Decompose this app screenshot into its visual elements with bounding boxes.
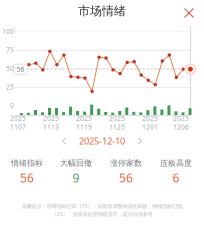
staticText: 大幅回撤 xyxy=(60,158,92,168)
staticText: 56 xyxy=(20,170,34,186)
staticText: （25），短线有反弹回暖需求；提示仅供参考 xyxy=(51,210,152,218)
staticText: 1113 xyxy=(43,122,59,131)
staticText: 2025 xyxy=(43,114,59,122)
staticText: 2025 xyxy=(173,114,189,122)
staticText: 2025 xyxy=(142,114,158,122)
staticText: 56 xyxy=(16,65,24,74)
staticText: 2025-12-10 xyxy=(79,135,125,147)
button[interactable]: 连板高度 xyxy=(153,160,199,184)
button[interactable]: 情绪指标 xyxy=(4,160,50,184)
staticText: 56 xyxy=(119,170,133,186)
staticText: 市场情绪 xyxy=(78,4,126,18)
staticText: 75 xyxy=(6,45,14,54)
staticText: 2025 xyxy=(76,114,92,122)
staticText: 1107 xyxy=(10,122,26,131)
button[interactable]: 关闭 xyxy=(180,4,198,22)
staticText: 2025 xyxy=(10,114,26,122)
staticText: 1206 xyxy=(173,122,189,131)
button[interactable]: 前一天 xyxy=(55,134,73,148)
staticText: 9 xyxy=(72,170,79,186)
button[interactable]: 后一天 xyxy=(131,134,149,148)
staticText: 2025 xyxy=(109,114,125,122)
button[interactable]: 大幅回撤 xyxy=(53,160,99,184)
staticText: 1201 xyxy=(142,122,158,131)
staticText: 6 xyxy=(172,170,179,186)
staticText: 1119 xyxy=(76,122,92,131)
button[interactable]: 涨停家数 xyxy=(103,160,149,184)
staticText: 1125 xyxy=(109,122,125,131)
staticText: 100 xyxy=(2,27,14,36)
staticText: 涨停家数 xyxy=(110,158,142,168)
staticText: 25 xyxy=(6,82,14,91)
staticText: 50 xyxy=(6,64,14,73)
staticText: 0 xyxy=(10,101,14,110)
staticText: 情绪指标 xyxy=(11,158,43,168)
staticText: 温馨提示：情绪指标过高（75），短期有调整回落的风险；情绪指标过低 xyxy=(21,202,182,209)
staticText: 连板高度 xyxy=(160,158,192,168)
